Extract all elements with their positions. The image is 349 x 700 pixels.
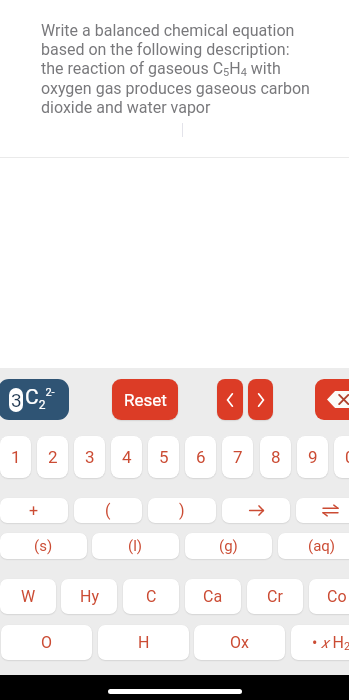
- button[interactable]: • x H2O: [291, 625, 349, 660]
- button[interactable]: 8: [260, 436, 291, 478]
- button[interactable]: 2: [37, 436, 68, 478]
- button[interactable]: Cr: [247, 579, 303, 614]
- button[interactable]: (l): [92, 533, 179, 559]
- button[interactable]: 9: [297, 436, 328, 478]
- staticText: Hy: [80, 587, 99, 606]
- staticText: 8: [271, 447, 281, 467]
- button[interactable]: Co: [309, 579, 349, 614]
- staticText: 3: [85, 447, 95, 467]
- button[interactable]: 7: [222, 436, 253, 478]
- button[interactable]: Ox: [194, 625, 285, 660]
- staticText: (s): [34, 537, 53, 555]
- button[interactable]: 3: [74, 436, 105, 478]
- staticText: O: [41, 633, 53, 652]
- button[interactable]: 4: [111, 436, 142, 478]
- staticText: C: [146, 587, 157, 606]
- button[interactable]: W: [0, 579, 56, 614]
- button[interactable]: Previous: [217, 379, 243, 420]
- staticText: 0: [345, 447, 349, 467]
- button[interactable]: Next: [248, 379, 273, 420]
- staticText: Reset: [124, 390, 167, 410]
- staticText: ): [179, 501, 185, 520]
- staticText: Write a balanced chemical equation: [41, 21, 295, 40]
- staticText: +: [29, 501, 39, 520]
- staticText: dioxide and water vapor: [41, 98, 211, 117]
- button[interactable]: O: [1, 625, 92, 660]
- staticText: W: [21, 587, 36, 606]
- button[interactable]: Yields arrow: [222, 498, 290, 523]
- staticText: Ox: [230, 633, 249, 652]
- button[interactable]: 3: [0, 379, 69, 420]
- staticText: • x H2O: [312, 633, 349, 653]
- button[interactable]: Reset: [112, 379, 178, 420]
- staticText: (g): [219, 537, 238, 555]
- staticText: 9: [308, 447, 318, 467]
- button[interactable]: (: [74, 498, 142, 523]
- staticText: based on the following description:: [41, 40, 290, 59]
- button[interactable]: Ca: [185, 579, 241, 614]
- button[interactable]: (g): [185, 533, 272, 559]
- staticText: 7: [233, 447, 243, 467]
- staticText: Ca: [203, 587, 223, 606]
- staticText: 1: [11, 447, 21, 467]
- staticText: 2: [48, 447, 58, 467]
- staticText: the reaction of gaseous C5H4 with: [41, 59, 281, 79]
- button[interactable]: ): [148, 498, 216, 523]
- staticText: C22-: [25, 385, 55, 412]
- button[interactable]: C: [123, 579, 179, 614]
- button[interactable]: 5: [148, 436, 179, 478]
- staticText: H: [138, 633, 150, 652]
- staticText: 5: [159, 447, 169, 467]
- staticText: (l): [128, 537, 143, 555]
- button[interactable]: 1: [0, 436, 31, 478]
- staticText: 4: [122, 447, 132, 467]
- button[interactable]: 6: [185, 436, 216, 478]
- button[interactable]: Equilibrium arrow: [296, 498, 349, 523]
- button[interactable]: (s): [0, 533, 87, 559]
- staticText: (: [105, 501, 111, 520]
- button[interactable]: H: [98, 625, 189, 660]
- button[interactable]: Hy: [61, 579, 117, 614]
- staticText: (aq): [308, 537, 336, 555]
- button[interactable]: 0: [334, 436, 349, 478]
- staticText: 6: [196, 447, 206, 467]
- button[interactable]: (aq): [278, 533, 349, 559]
- button[interactable]: Backspace: [315, 379, 349, 420]
- staticText: Co: [327, 587, 347, 606]
- button[interactable]: +: [0, 498, 68, 523]
- staticText: oxygen gas produces gaseous carbon: [41, 79, 310, 98]
- staticText: Cr: [267, 587, 283, 606]
- staticText: 3: [11, 389, 22, 411]
